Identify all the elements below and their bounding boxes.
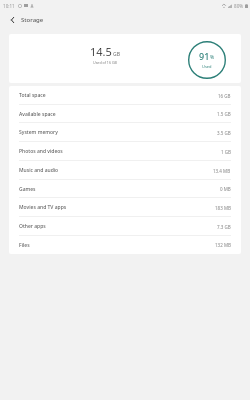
- staticText: 132 MB: [215, 242, 231, 248]
- button[interactable]: Games: [9, 180, 241, 198]
- button[interactable]: Available space: [9, 105, 241, 123]
- staticText: 10:11: [3, 3, 15, 9]
- staticText: Photos and videos: [19, 148, 63, 155]
- staticText: 1.5 GB: [217, 111, 231, 117]
- button[interactable]: System memory: [9, 123, 241, 142]
- staticText: Movies and TV apps: [19, 204, 67, 211]
- staticText: GB: [113, 51, 120, 58]
- button[interactable]: Other apps: [9, 217, 241, 236]
- staticText: 1 GB: [221, 149, 231, 155]
- staticText: 91: [199, 50, 210, 62]
- staticText: 7.3 GB: [217, 224, 231, 230]
- button[interactable]: Files: [9, 236, 241, 254]
- button[interactable]: Total space: [9, 86, 241, 105]
- staticText: 13.4 MB: [213, 168, 231, 174]
- staticText: 14.5: [90, 44, 112, 59]
- staticText: Total space: [19, 92, 46, 99]
- button[interactable]: Photos and videos: [9, 142, 241, 161]
- staticText: System memory: [19, 129, 58, 136]
- staticText: 80%: [234, 3, 244, 9]
- staticText: Used: [202, 64, 212, 69]
- staticText: Storage: [21, 16, 44, 24]
- staticText: %: [210, 54, 215, 61]
- button[interactable]: Music and audio: [9, 161, 241, 180]
- staticText: 183 MB: [215, 205, 231, 211]
- staticText: Files: [19, 242, 30, 249]
- staticText: 3.5 GB: [217, 130, 231, 136]
- staticText: 0 MB: [220, 186, 231, 192]
- staticText: Other apps: [19, 223, 46, 230]
- staticText: 16 GB: [218, 93, 231, 99]
- staticText: Used of 16 GB: [93, 60, 117, 65]
- button[interactable]: Movies and TV apps: [9, 198, 241, 217]
- staticText: Games: [19, 186, 36, 193]
- staticText: Available space: [19, 111, 56, 118]
- button[interactable]: Back: [0, 11, 24, 29]
- staticText: Music and audio: [19, 167, 59, 174]
